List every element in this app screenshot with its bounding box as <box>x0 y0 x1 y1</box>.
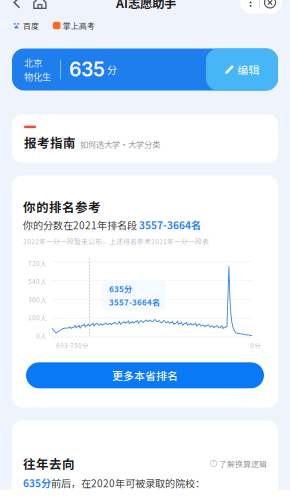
staticText: 635 <box>69 58 105 81</box>
button[interactable]: 编辑 <box>206 48 278 90</box>
staticText: 北京 <box>24 56 42 69</box>
staticText: 635分 <box>109 283 132 295</box>
staticText: 分 <box>107 62 117 77</box>
button[interactable]: Close <box>260 0 280 11</box>
staticText: 0人 <box>36 331 47 340</box>
staticText: 540人 <box>28 276 47 286</box>
staticText: 3557-3664名 <box>139 218 201 232</box>
staticText: 前后，在2020年可被录取的院校： <box>51 475 205 490</box>
staticText: 360人 <box>28 295 47 304</box>
staticText: AI志愿助手 <box>116 0 176 11</box>
button[interactable]: Home <box>28 0 52 14</box>
staticText: 0分 <box>250 341 261 350</box>
button[interactable]: 更多本省排名 <box>26 362 264 388</box>
staticText: 如何选大学·大学分类 <box>80 138 160 150</box>
staticText: 报考指南 <box>24 133 76 151</box>
staticText: 180人 <box>28 313 47 322</box>
staticText: 掌上高考 <box>63 20 95 31</box>
staticText: 你的排名参考 <box>23 197 101 216</box>
staticText: 693-750分 <box>56 341 89 350</box>
staticText: 720人 <box>28 258 47 268</box>
button[interactable]: More options <box>242 0 259 11</box>
staticText: 了解换算逻辑 <box>219 458 267 469</box>
staticText: 编辑 <box>237 61 259 77</box>
staticText: 百度 <box>23 20 39 31</box>
staticText: 635分 <box>23 475 51 490</box>
staticText: 往年去向 <box>23 454 75 472</box>
staticText: 更多本省排名 <box>112 367 178 383</box>
button[interactable]: Back <box>6 0 28 14</box>
staticText: ? <box>212 460 215 467</box>
button[interactable]: 报考指南 <box>12 114 278 162</box>
staticText: 物化生 <box>24 70 51 83</box>
staticText: 2022年一分一段暂未公布，上述排名参考2021年一分一段表 <box>23 236 209 246</box>
staticText: 你的分数在2021年排名段 <box>23 218 139 232</box>
staticText: 3557-3664名 <box>109 296 160 308</box>
button[interactable]: ? <box>210 458 267 469</box>
